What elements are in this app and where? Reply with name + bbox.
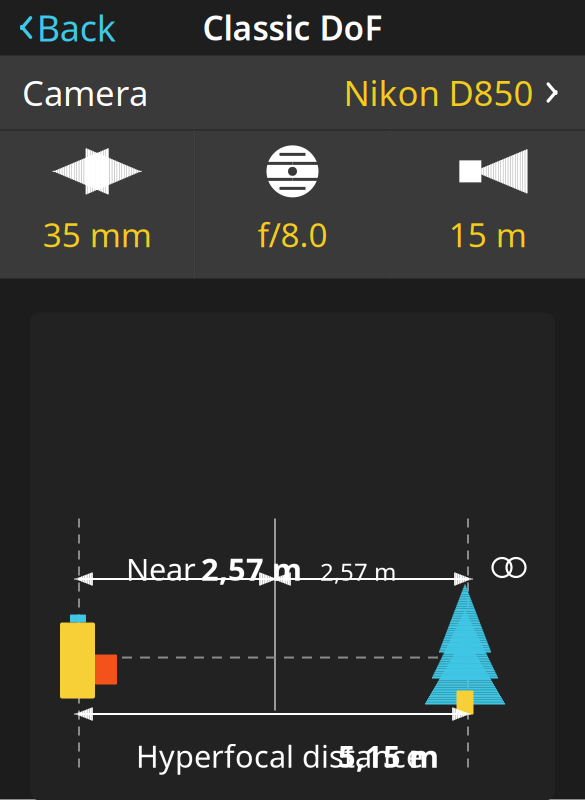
staticText: Nikon D850 [344, 69, 534, 115]
button[interactable]: Focal length 35 mm [0, 130, 194, 278]
button[interactable]: Camera [0, 55, 585, 129]
staticText: Hyperfocal distance [136, 735, 431, 776]
staticText: Back [37, 4, 116, 51]
staticText: 2,57 m [320, 555, 396, 587]
staticText: Camera [22, 69, 148, 115]
staticText: 15 m [449, 212, 527, 256]
staticText: Classic DoF [202, 5, 382, 50]
staticText: f/8.0 [257, 212, 327, 256]
staticText: 2,57 m [201, 548, 302, 589]
staticText: 35 mm [43, 212, 152, 256]
button[interactable]: Focus distance 15 m [391, 130, 585, 278]
staticText: 5,15 m [338, 735, 439, 776]
button[interactable]: Back [0, 0, 116, 57]
button[interactable]: Aperture f/8.0 [195, 130, 390, 278]
staticText: Near [126, 548, 196, 589]
